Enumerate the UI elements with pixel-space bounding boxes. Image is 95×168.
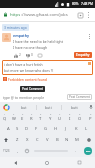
staticText: N — [65, 137, 69, 143]
button[interactable]: , — [13, 145, 22, 156]
staticText: 8 — [69, 113, 71, 116]
button[interactable]: Enter — [80, 145, 95, 156]
staticText: ?123 — [3, 149, 10, 153]
button[interactable]: M — [72, 134, 82, 145]
button[interactable]: 6 — [45, 112, 55, 123]
button[interactable]: Reload — [76, 11, 84, 19]
button[interactable]: ?123 — [0, 145, 13, 156]
staticText: https — [10, 12, 21, 18]
button[interactable]: Home — [31, 157, 63, 168]
staticText: 9 — [79, 113, 81, 116]
staticText: I — [69, 116, 71, 122]
button[interactable]: N — [62, 134, 72, 145]
staticText: 7 — [59, 113, 61, 116]
staticText: 80% — [72, 2, 79, 6]
button[interactable]: S — [13, 123, 22, 134]
staticText: ENT — [86, 150, 91, 153]
staticText: X — [26, 137, 29, 143]
button[interactable]: Post options — [86, 33, 93, 40]
button[interactable]: A — [4, 123, 13, 134]
button[interactable]: 3 minutes ago — [2, 24, 29, 31]
button[interactable]: F — [31, 123, 41, 134]
staticText: type @ to mention people — [3, 95, 67, 100]
button[interactable]: B — [52, 134, 62, 145]
button[interactable]: Empathy — [74, 52, 92, 58]
staticText: P — [89, 116, 92, 122]
button[interactable]: X — [22, 134, 32, 145]
button[interactable]: Space — [32, 146, 70, 155]
staticText: O — [78, 116, 82, 122]
staticText: D — [25, 126, 29, 132]
button[interactable]: Shift — [0, 134, 12, 145]
button[interactable]: Recent apps — [63, 157, 95, 168]
staticText: K — [75, 126, 78, 132]
button[interactable]: 8 — [65, 112, 75, 123]
staticText: i don't have a hurt fetish — [4, 62, 43, 67]
staticText: 4 — [31, 113, 33, 116]
button[interactable]: but i — [37, 102, 61, 112]
staticText: 5 — [40, 113, 42, 116]
staticText: A — [7, 126, 10, 132]
button[interactable]: Avatar — [2, 33, 11, 42]
staticText: 3 — [22, 113, 24, 116]
staticText: 3 minutes ago — [4, 25, 27, 30]
button[interactable]: 5 — [36, 112, 45, 123]
staticText: ://www.gfsaat.com/jobs — [21, 12, 68, 18]
button[interactable]: 0 — [85, 112, 95, 123]
staticText: , — [17, 148, 19, 153]
button[interactable]: 7 — [55, 112, 65, 123]
button[interactable]: 2 — [9, 112, 18, 123]
button[interactable]: 4 — [27, 112, 36, 123]
button[interactable]: K — [71, 123, 81, 134]
staticText: H — [54, 126, 58, 132]
button[interactable]: Backspace — [82, 134, 95, 145]
button[interactable]: More options — [84, 11, 92, 19]
staticText: 6 — [50, 113, 52, 116]
button[interactable]: C — [32, 134, 42, 145]
button[interactable]: Post Comment — [67, 94, 92, 100]
button[interactable]: Z — [12, 134, 22, 145]
button[interactable]: empathy — [13, 33, 30, 38]
button[interactable]: V — [42, 134, 52, 145]
staticText: Post Comment — [22, 87, 43, 91]
staticText: butt — [71, 105, 78, 110]
staticText: I have no one though — [13, 45, 48, 50]
button[interactable]: 1 — [0, 112, 9, 123]
staticText: V — [46, 137, 49, 143]
button[interactable]: https — [10, 12, 76, 18]
staticText: but — [21, 105, 27, 110]
staticText: Empathy — [76, 53, 90, 57]
staticText: but i — [45, 105, 53, 110]
staticText: I have the need to be held tight — [13, 39, 63, 44]
button[interactable]: 9 — [75, 112, 85, 123]
button[interactable]: Voice input — [86, 102, 95, 112]
button[interactable]: G — [41, 123, 51, 134]
staticText: 2 — [19, 53, 21, 57]
button[interactable]: Dislike — [25, 53, 30, 58]
button[interactable]: Secure connection — [3, 12, 8, 17]
staticText: but more we know who does ?( — [4, 68, 54, 73]
staticText: Z — [16, 137, 19, 143]
button[interactable]: butt — [62, 102, 86, 112]
button[interactable]: 3 — [18, 112, 27, 123]
button[interactable]: J — [61, 123, 71, 134]
staticText: C — [36, 137, 39, 143]
button[interactable]: Emoji — [22, 145, 31, 156]
staticText: M — [75, 137, 79, 143]
staticText: . — [75, 148, 77, 153]
button[interactable]: L — [81, 123, 91, 134]
button[interactable]: H — [51, 123, 61, 134]
staticText: Post Comment — [69, 95, 90, 99]
button[interactable]: Post Comment — [20, 86, 45, 92]
button[interactable]: Like — [13, 53, 18, 58]
button[interactable]: but — [12, 102, 36, 112]
button[interactable]: Back — [0, 157, 31, 168]
staticText: R — [30, 116, 33, 122]
button[interactable]: Google — [0, 102, 12, 112]
staticText: 2 — [13, 113, 15, 116]
button[interactable]: Comment — [37, 53, 42, 58]
button[interactable]: D — [22, 123, 31, 134]
staticText: Y — [49, 116, 52, 122]
